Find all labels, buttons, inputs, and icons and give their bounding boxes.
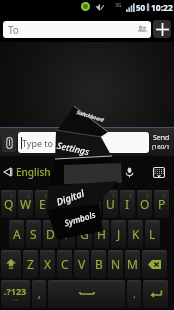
- staticText: Q: [4, 196, 14, 212]
- button[interactable]: [143, 280, 168, 308]
- button[interactable]: Y: [86, 190, 101, 218]
- staticText: 3G: [115, 2, 122, 9]
- button[interactable]: [48, 280, 125, 308]
- staticText: Type to: [22, 137, 54, 149]
- staticText: Switchboard: [76, 109, 105, 124]
- button[interactable]: Keyboard options menu: [46, 100, 118, 240]
- button[interactable]: To: [3, 21, 151, 38]
- staticText: U: [106, 196, 115, 212]
- staticText: ,: [38, 287, 41, 301]
- staticText: 50: [136, 2, 146, 13]
- button[interactable]: F: [60, 220, 75, 248]
- staticText: S: [30, 226, 37, 242]
- staticText: H: [97, 226, 106, 242]
- staticText: Z: [27, 256, 34, 272]
- button[interactable]: V: [74, 250, 89, 278]
- staticText: F: [64, 226, 71, 242]
- staticText: 2: [27, 193, 30, 200]
- staticText: A: [13, 226, 21, 242]
- button[interactable]: B: [91, 250, 106, 278]
- staticText: 0: [163, 193, 166, 200]
- staticText: W: [20, 196, 32, 212]
- button[interactable]: M: [125, 250, 140, 278]
- button[interactable]: K: [128, 220, 143, 248]
- button[interactable]: English: [3, 165, 51, 179]
- button[interactable]: Add recipient: [153, 20, 171, 38]
- button[interactable]: .?123: [1, 280, 30, 308]
- staticText: G: [80, 226, 89, 242]
- staticText: X: [44, 256, 52, 272]
- button[interactable]: D: [43, 220, 58, 248]
- button[interactable]: Q: [1, 190, 16, 218]
- staticText: 4: [61, 193, 64, 200]
- button[interactable]: Hide keyboard: [151, 164, 167, 180]
- staticText: .?123: [4, 285, 27, 297]
- staticText: Digital: [55, 186, 86, 208]
- staticText: N: [111, 256, 121, 272]
- button[interactable]: Send: [149, 128, 173, 156]
- button[interactable]: Voice input: [121, 164, 137, 180]
- staticText: Send: [153, 133, 170, 143]
- staticText: K: [132, 226, 140, 242]
- staticText: P: [158, 196, 166, 212]
- button[interactable]: J: [111, 220, 126, 248]
- staticText: Y: [90, 196, 97, 212]
- button[interactable]: Z: [23, 250, 38, 278]
- staticText: E: [39, 196, 46, 212]
- button[interactable]: U: [103, 190, 118, 218]
- staticText: B: [95, 256, 103, 272]
- button[interactable]: Backspace: [142, 250, 167, 278]
- staticText: 7: [112, 193, 115, 200]
- staticText: M: [127, 256, 138, 272]
- button[interactable]: Type to: [18, 132, 149, 153]
- button[interactable]: E: [35, 190, 50, 218]
- button[interactable]: W: [18, 190, 33, 218]
- button[interactable]: A: [9, 220, 24, 248]
- staticText: 3: [44, 193, 47, 200]
- button[interactable]: I: [120, 190, 135, 218]
- button[interactable]: ,: [32, 280, 46, 308]
- button[interactable]: C: [57, 250, 72, 278]
- staticText: O: [140, 196, 150, 212]
- staticText: 1: [10, 193, 13, 200]
- button[interactable]: R: [52, 190, 67, 218]
- staticText: L: [149, 226, 156, 242]
- staticText: V: [78, 256, 86, 272]
- staticText: English: [16, 165, 51, 179]
- staticText: J: [117, 226, 121, 242]
- staticText: R: [56, 196, 64, 212]
- staticText: 8: [129, 193, 132, 200]
- button[interactable]: .: [127, 280, 141, 308]
- button[interactable]: S: [26, 220, 41, 248]
- staticText: To: [8, 23, 19, 37]
- staticText: T: [73, 196, 80, 212]
- button[interactable]: X: [40, 250, 55, 278]
- staticText: (160/1: [152, 143, 170, 151]
- button[interactable]: O: [137, 190, 152, 218]
- button[interactable]: H: [94, 220, 109, 248]
- button[interactable]: N: [108, 250, 123, 278]
- staticText: .: [133, 287, 136, 301]
- button[interactable]: Attach: [2, 133, 16, 152]
- button[interactable]: T: [69, 190, 84, 218]
- staticText: 5: [78, 193, 81, 200]
- button[interactable]: L: [145, 220, 160, 248]
- button[interactable]: Shift: [1, 250, 21, 278]
- staticText: Settings: [56, 139, 91, 157]
- button[interactable]: P: [154, 190, 169, 218]
- staticText: D: [46, 226, 55, 242]
- staticText: Symbols: [63, 209, 97, 229]
- staticText: I: [125, 196, 130, 212]
- staticText: 9: [146, 193, 149, 200]
- button[interactable]: G: [77, 220, 92, 248]
- staticText: •••: [13, 297, 19, 304]
- staticText: C: [61, 256, 69, 272]
- staticText: 10:22: [151, 2, 173, 14]
